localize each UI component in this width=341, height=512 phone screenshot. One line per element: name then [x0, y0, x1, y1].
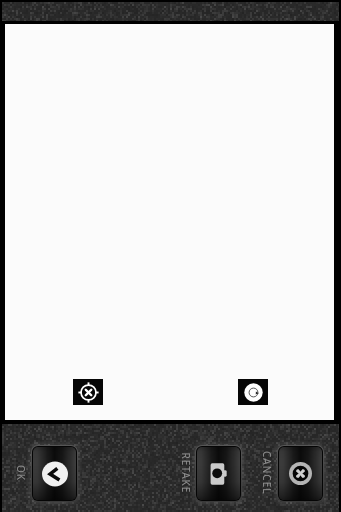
button[interactable]: Retake [197, 447, 240, 500]
staticText: CANCEL [260, 451, 274, 495]
staticText: OK [14, 465, 28, 481]
button[interactable]: OK [33, 447, 76, 500]
staticText: RETAKE [178, 452, 192, 493]
button[interactable]: Compass [238, 379, 268, 405]
button[interactable]: Cancel [279, 447, 322, 500]
button[interactable]: My location [73, 379, 103, 405]
